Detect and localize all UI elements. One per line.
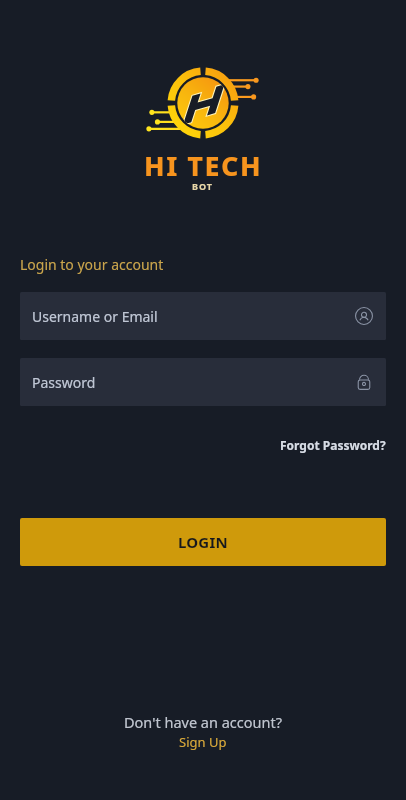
- staticText: Forgot Password?: [280, 437, 386, 453]
- staticText: BOT: [192, 180, 214, 192]
- other: Account: [355, 307, 373, 325]
- staticText: Sign Up: [179, 733, 227, 751]
- staticText: Username or Email: [32, 307, 158, 326]
- button[interactable]: Username or Email: [20, 292, 386, 340]
- button[interactable]: Forgot Password?: [280, 437, 386, 453]
- button[interactable]: Password: [20, 358, 386, 406]
- staticText: HI TECH: [144, 147, 263, 184]
- staticText: Login to your account: [20, 255, 164, 274]
- staticText: Don't have an account?: [124, 712, 282, 732]
- other: Password: [355, 373, 373, 391]
- staticText: LOGIN: [178, 532, 228, 552]
- staticText: Password: [32, 373, 96, 392]
- button[interactable]: LOGIN: [20, 518, 386, 566]
- button[interactable]: Sign Up: [179, 733, 227, 751]
